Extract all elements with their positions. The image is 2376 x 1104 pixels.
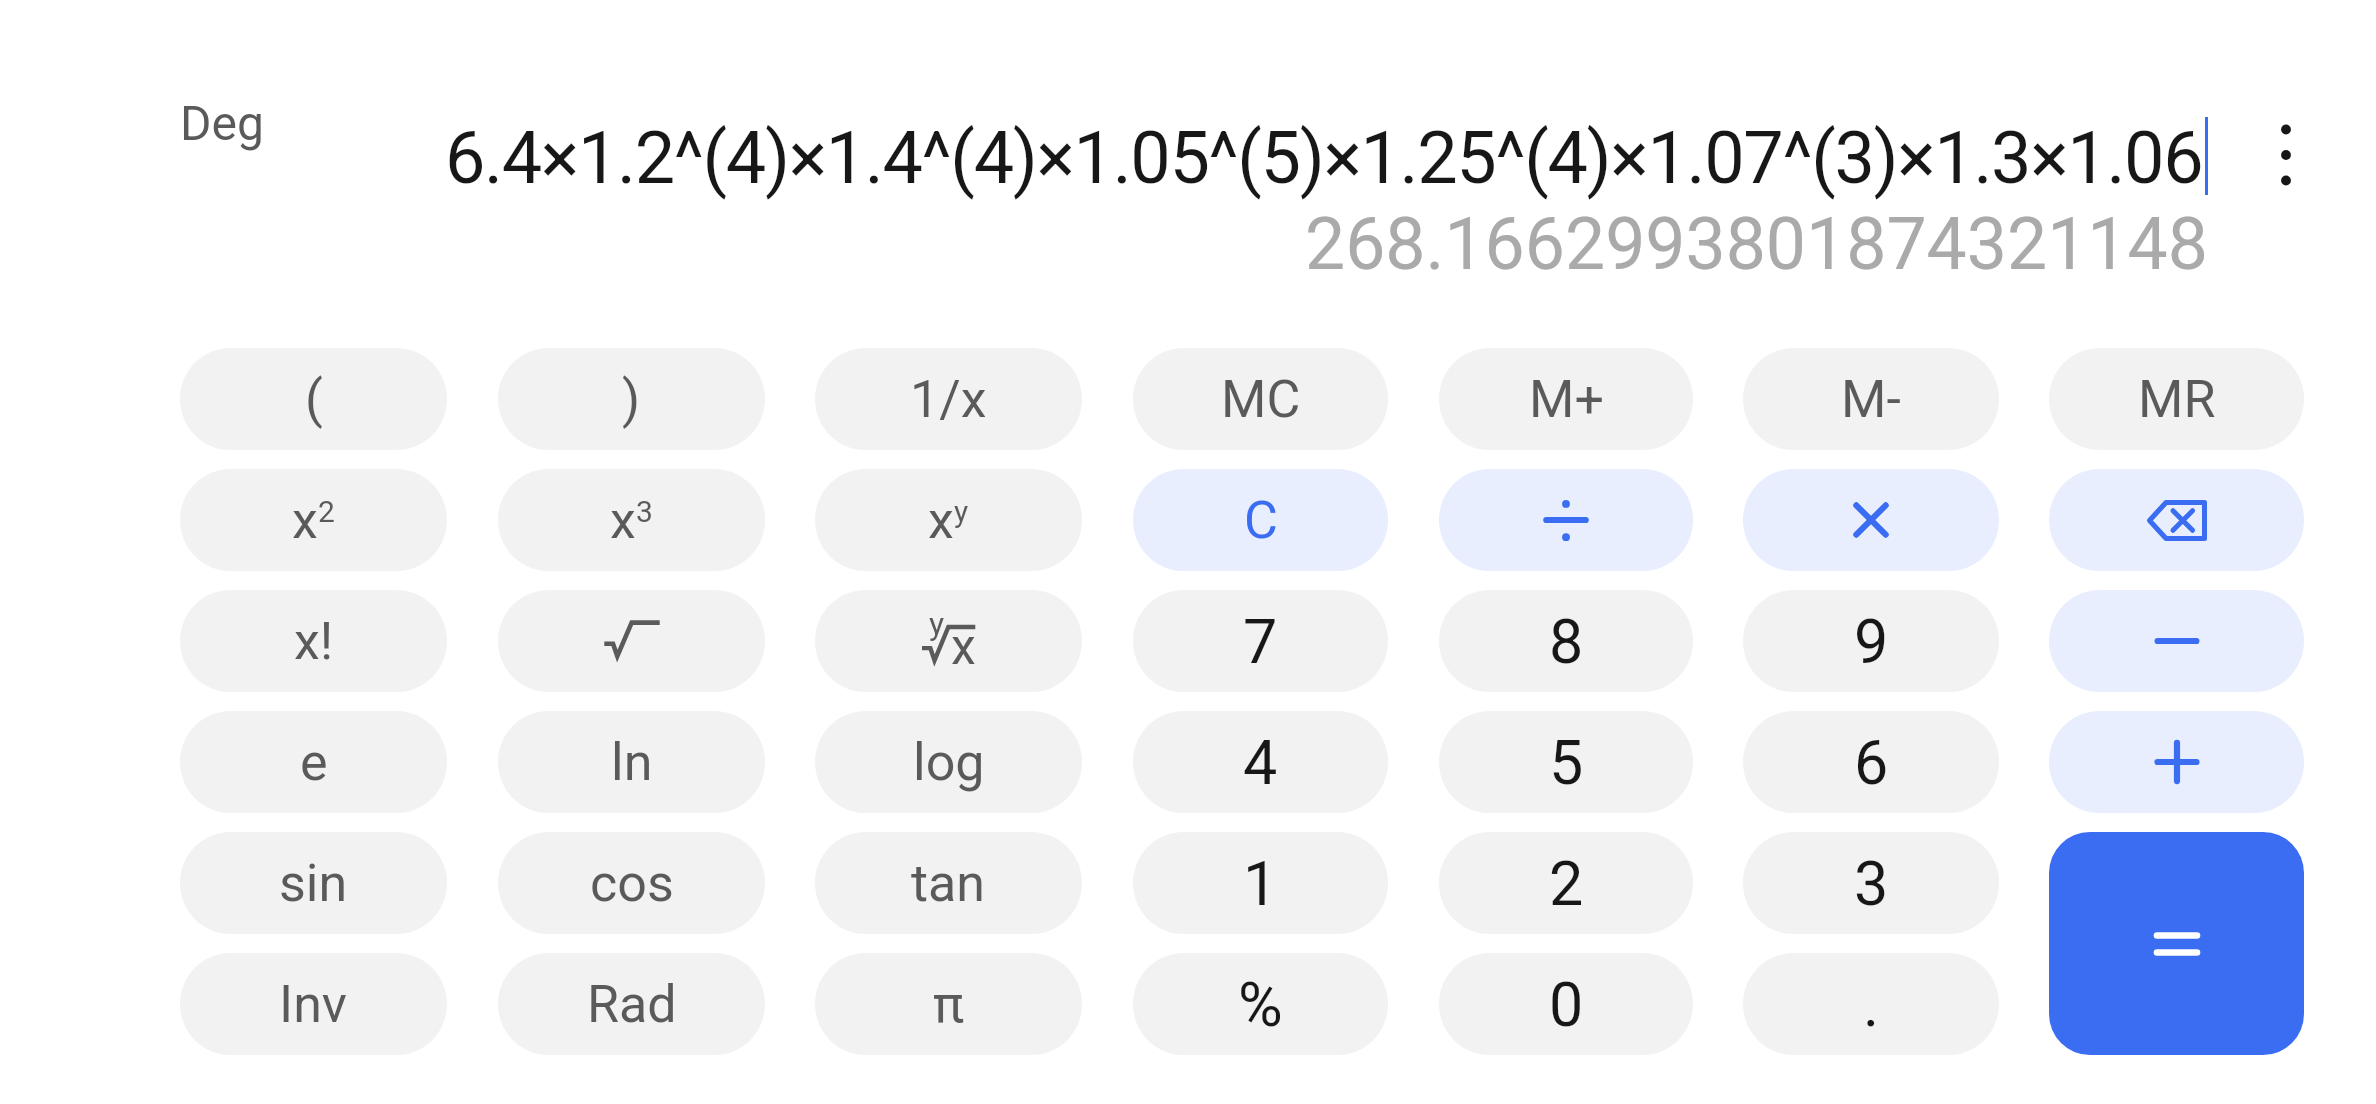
staticText: x (928, 490, 954, 551)
staticText: 0 (1549, 969, 1584, 1040)
staticText: y (929, 605, 945, 643)
staticText: e (300, 732, 328, 793)
staticText: 1/x (910, 369, 987, 430)
button[interactable]: Nth root (815, 590, 1082, 692)
staticText: π (933, 974, 965, 1035)
staticText: 3 (1854, 848, 1889, 919)
staticText: 8 (1549, 606, 1584, 677)
staticText: ( (305, 369, 323, 430)
button[interactable]: x (180, 469, 447, 571)
button[interactable]: 9 (1743, 590, 1999, 692)
button[interactable]: 1 (1133, 832, 1388, 934)
staticText: 1 (1243, 848, 1278, 919)
button[interactable]: M- (1743, 348, 1999, 450)
staticText: 268.1662993801874321148 (1305, 203, 2208, 287)
staticText: % (1238, 969, 1283, 1040)
staticText: C (1244, 490, 1278, 551)
staticText: 6.4×1.2^(4)×1.4^(4)×1.05^(5)×1.25^(4)×1.… (445, 116, 2203, 200)
button[interactable]: Square root (498, 590, 765, 692)
button[interactable]: . (1743, 953, 1999, 1055)
button[interactable]: Minus (2049, 590, 2304, 692)
button[interactable]: 4 (1133, 711, 1388, 813)
staticText: 3 (636, 494, 653, 529)
button[interactable]: MC (1133, 348, 1388, 450)
staticText: 6 (1854, 727, 1889, 798)
button[interactable]: 6 (1743, 711, 1999, 813)
button[interactable]: MR (2049, 348, 2304, 450)
button[interactable]: sin (180, 832, 447, 934)
staticText: M+ (1529, 369, 1604, 430)
button[interactable]: x (498, 469, 765, 571)
button[interactable]: ) (498, 348, 765, 450)
button[interactable]: Multiply (1743, 469, 1999, 571)
staticText: log (913, 732, 985, 793)
button[interactable]: Deg (180, 95, 264, 151)
staticText: x (610, 490, 636, 551)
button[interactable]: % (1133, 953, 1388, 1055)
staticText: Inv (279, 974, 348, 1035)
staticText: x (951, 618, 976, 665)
staticText: tan (911, 853, 986, 914)
staticText: 5 (1549, 727, 1584, 798)
button[interactable]: x (815, 469, 1082, 571)
button[interactable]: tan (815, 832, 1082, 934)
staticText: 7 (1243, 606, 1278, 677)
staticText: Deg (180, 95, 264, 151)
button[interactable]: M+ (1439, 348, 1693, 450)
staticText: y (954, 494, 969, 529)
button[interactable]: ( (180, 348, 447, 450)
staticText: ) (622, 369, 641, 430)
staticText: Rad (587, 974, 677, 1035)
button[interactable]: Inv (180, 953, 447, 1055)
button[interactable]: e (180, 711, 447, 813)
button[interactable]: Divide (1439, 469, 1693, 571)
staticText: MR (2138, 369, 2216, 430)
staticText: x! (294, 611, 334, 672)
button[interactable]: Backspace (2049, 469, 2304, 571)
staticText: . (1863, 969, 1880, 1040)
button[interactable]: π (815, 953, 1082, 1055)
button[interactable]: cos (498, 832, 765, 934)
staticText: sin (279, 853, 348, 914)
button[interactable]: 5 (1439, 711, 1693, 813)
button[interactable]: 2 (1439, 832, 1693, 934)
staticText: cos (590, 853, 674, 914)
button[interactable]: log (815, 711, 1082, 813)
staticText: MC (1221, 369, 1301, 430)
staticText: 2 (1549, 848, 1584, 919)
button[interactable]: Equals (2049, 832, 2304, 1055)
button[interactable]: More options (2226, 95, 2346, 215)
button[interactable]: ln (498, 711, 765, 813)
button[interactable]: C (1133, 469, 1388, 571)
button[interactable]: x! (180, 590, 447, 692)
staticText: 4 (1243, 727, 1278, 798)
button[interactable]: 8 (1439, 590, 1693, 692)
staticText: ln (611, 732, 653, 793)
staticText: 9 (1854, 606, 1889, 677)
staticText: x (292, 490, 318, 551)
button[interactable]: Rad (498, 953, 765, 1055)
staticText: 2 (318, 494, 335, 529)
button[interactable]: 7 (1133, 590, 1388, 692)
button[interactable]: Plus (2049, 711, 2304, 813)
staticText: M- (1841, 369, 1901, 430)
button[interactable]: 3 (1743, 832, 1999, 934)
button[interactable]: 0 (1439, 953, 1693, 1055)
button[interactable]: 1/x (815, 348, 1082, 450)
